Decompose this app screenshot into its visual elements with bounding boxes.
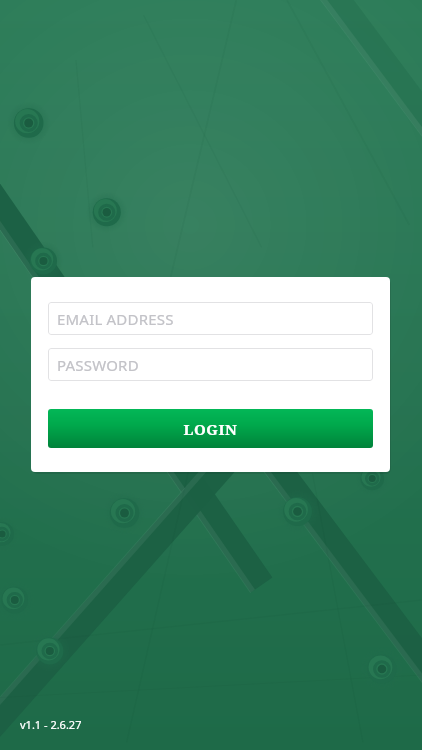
button[interactable]: EMAIL ADDRESS <box>48 302 373 335</box>
staticText: PASSWORD <box>57 355 139 375</box>
staticText: EMAIL ADDRESS <box>57 309 174 329</box>
button[interactable]: LOGIN <box>48 409 373 448</box>
staticText: v1.1 - 2.6.27 <box>20 717 82 732</box>
button[interactable]: PASSWORD <box>48 348 373 381</box>
staticText: LOGIN <box>183 419 238 439</box>
